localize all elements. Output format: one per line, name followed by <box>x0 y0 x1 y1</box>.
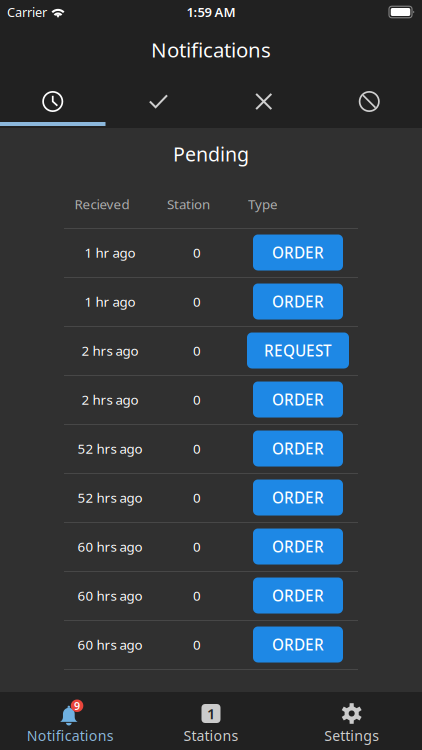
staticText: 1 hr ago <box>84 243 135 262</box>
staticText: Recieved <box>74 195 129 213</box>
staticText: Stations <box>183 726 238 745</box>
staticText: 1 <box>207 704 215 723</box>
staticText: Type <box>248 195 278 213</box>
staticText: ORDER <box>272 536 324 557</box>
staticText: 0 <box>193 439 201 458</box>
staticText: 60 hrs ago <box>77 635 142 654</box>
staticText: ORDER <box>272 487 324 508</box>
button[interactable]: ORDER <box>253 479 343 515</box>
button[interactable]: 9 <box>0 692 141 750</box>
staticText: ORDER <box>272 438 324 459</box>
button[interactable]: Pending <box>0 77 105 126</box>
staticText: ORDER <box>272 634 324 655</box>
button[interactable]: Completed <box>105 77 211 126</box>
staticText: 60 hrs ago <box>77 537 142 556</box>
staticText: Station <box>167 195 210 213</box>
staticText: ORDER <box>272 291 324 312</box>
staticText: ORDER <box>272 585 324 606</box>
button[interactable]: ORDER <box>253 283 343 319</box>
button[interactable]: ORDER <box>253 234 343 270</box>
button[interactable]: 1 <box>141 692 281 750</box>
staticText: REQUEST <box>264 340 332 361</box>
staticText: Notifications <box>27 726 114 745</box>
staticText: 1:59 AM <box>186 3 235 21</box>
staticText: 0 <box>193 292 201 311</box>
staticText: 2 hrs ago <box>81 341 138 360</box>
staticText: Settings <box>324 726 379 745</box>
button[interactable]: Cancelled <box>211 77 316 126</box>
button[interactable]: REQUEST <box>247 332 349 368</box>
button[interactable]: Rejected <box>316 77 422 126</box>
button[interactable]: ORDER <box>253 528 343 564</box>
staticText: 9 <box>74 699 80 713</box>
button[interactable]: ORDER <box>253 577 343 613</box>
staticText: ORDER <box>272 242 324 263</box>
staticText: 1 hr ago <box>84 292 135 311</box>
button[interactable]: ORDER <box>253 381 343 417</box>
staticText: 0 <box>193 243 201 262</box>
staticText: 0 <box>193 537 201 556</box>
staticText: Pending <box>173 141 249 167</box>
staticText: 52 hrs ago <box>77 439 142 458</box>
button[interactable]: ORDER <box>253 430 343 466</box>
button[interactable]: ORDER <box>253 626 343 662</box>
staticText: Carrier <box>7 3 47 21</box>
staticText: Notifications <box>151 36 271 63</box>
button[interactable]: Settings <box>281 692 422 750</box>
staticText: 0 <box>193 635 201 654</box>
staticText: ORDER <box>272 389 324 410</box>
staticText: 2 hrs ago <box>81 390 138 409</box>
staticText: 0 <box>193 341 201 360</box>
staticText: 0 <box>193 390 201 409</box>
staticText: 52 hrs ago <box>77 488 142 507</box>
staticText: 60 hrs ago <box>77 586 142 605</box>
staticText: 0 <box>193 488 201 507</box>
staticText: 0 <box>193 586 201 605</box>
